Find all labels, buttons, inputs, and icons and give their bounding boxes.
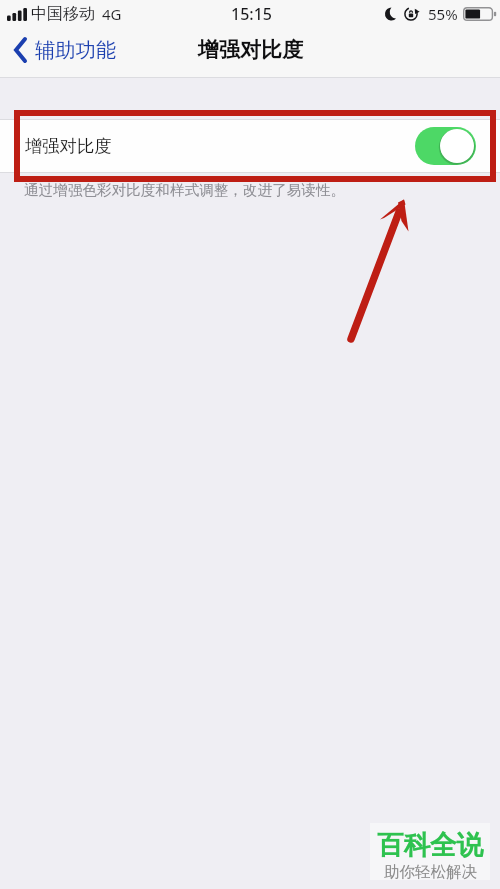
button[interactable]: 辅助功能 — [6, 34, 127, 66]
staticText: 增强对比度 — [25, 135, 112, 157]
staticText: 助你轻松解决 — [384, 862, 477, 880]
staticText: 通过增强色彩对比度和样式调整，改进了易读性。 — [24, 181, 346, 199]
staticText: 增强对比度 — [198, 37, 303, 63]
button[interactable]: Toggle increase contrast — [415, 127, 476, 165]
button[interactable]: 增强对比度 — [0, 120, 500, 172]
staticText: 55% — [428, 4, 458, 24]
staticText: 辅助功能 — [35, 37, 117, 63]
staticText: 中国移动 — [31, 4, 95, 24]
staticText: 百科全说 — [377, 828, 483, 861]
staticText: 4G — [102, 4, 122, 24]
staticText: 15:15 — [231, 3, 272, 25]
